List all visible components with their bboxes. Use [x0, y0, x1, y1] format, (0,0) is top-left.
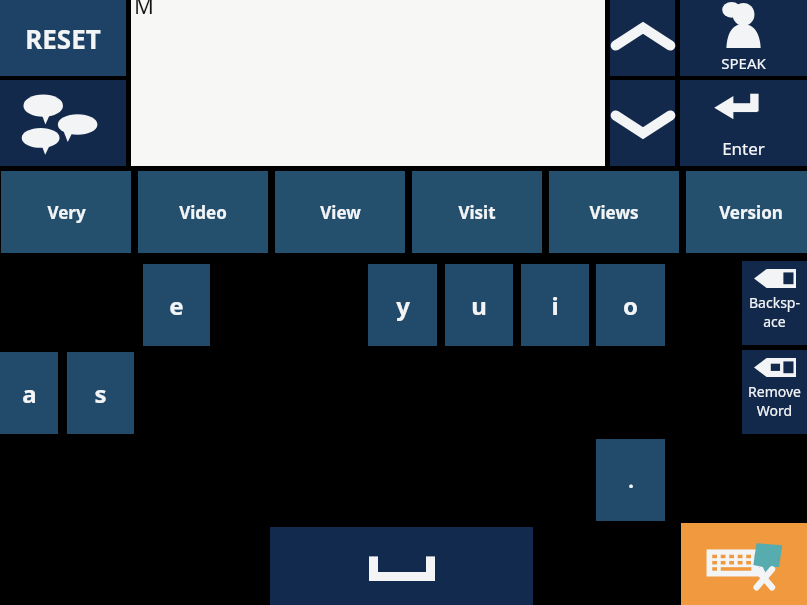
staticText: Backsp- ace: [749, 293, 800, 331]
button[interactable]: Very: [1, 171, 131, 253]
staticText: Views: [589, 201, 639, 224]
staticText: Visit: [458, 201, 496, 224]
staticText: a: [22, 377, 37, 410]
button[interactable]: o: [596, 264, 665, 346]
button[interactable]: Version: [686, 171, 807, 253]
staticText: RESET: [25, 21, 101, 56]
staticText: s: [94, 377, 107, 410]
staticText: o: [623, 289, 638, 322]
button[interactable]: M: [131, 0, 605, 166]
button[interactable]: RESET: [0, 0, 126, 76]
button[interactable]: Video: [138, 171, 268, 253]
button[interactable]: y: [368, 264, 437, 346]
button[interactable]: u: [445, 264, 513, 346]
button[interactable]: s: [67, 352, 134, 434]
button[interactable]: Scroll down: [610, 80, 675, 166]
button[interactable]: Phrases: [0, 80, 126, 166]
staticText: Remove Word: [748, 382, 801, 420]
button[interactable]: a: [0, 352, 58, 434]
staticText: e: [169, 289, 184, 322]
staticText: u: [471, 289, 487, 322]
staticText: .: [628, 467, 634, 494]
staticText: M: [134, 0, 154, 20]
button[interactable]: Views: [549, 171, 679, 253]
staticText: Video: [179, 201, 227, 224]
staticText: View: [320, 201, 361, 224]
staticText: y: [396, 289, 410, 322]
button[interactable]: Backspace: [742, 261, 807, 345]
button[interactable]: Hide keyboard: [681, 523, 807, 605]
button[interactable]: Space: [270, 527, 533, 605]
button[interactable]: Enter: [680, 80, 807, 166]
staticText: SPEAK: [721, 53, 766, 73]
button[interactable]: Remove word: [742, 350, 807, 434]
staticText: Version: [719, 201, 783, 224]
button[interactable]: View: [275, 171, 405, 253]
button[interactable]: SPEAK: [680, 0, 807, 76]
button[interactable]: i: [521, 264, 589, 346]
button[interactable]: e: [143, 264, 210, 346]
button[interactable]: .: [596, 439, 665, 521]
staticText: Enter: [722, 137, 765, 160]
button[interactable]: Scroll up: [610, 0, 675, 76]
staticText: i: [551, 289, 559, 322]
button[interactable]: Visit: [412, 171, 542, 253]
staticText: Very: [47, 201, 86, 224]
